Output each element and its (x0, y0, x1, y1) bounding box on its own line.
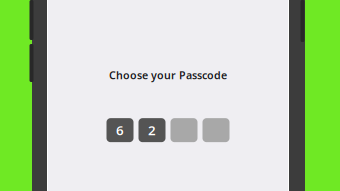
staticText: 2 (148, 121, 156, 139)
button[interactable]: Empty passcode digit (202, 118, 229, 142)
button[interactable]: Passcode digit 6 (106, 118, 133, 142)
staticText: Choose your Passcode (109, 68, 227, 82)
button[interactable]: Passcode digit 2 (138, 118, 165, 142)
staticText: 6 (116, 121, 124, 139)
button[interactable]: Empty passcode digit (170, 118, 197, 142)
